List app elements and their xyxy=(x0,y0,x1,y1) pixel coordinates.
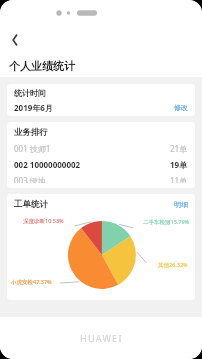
staticText: 003 绿地 xyxy=(14,175,46,183)
staticText: 11单 xyxy=(170,175,188,183)
staticText: 小虎安检47.37% xyxy=(11,278,52,286)
staticText: 业务排行 xyxy=(14,127,48,138)
button[interactable]: 003 绿地 xyxy=(14,175,188,183)
button[interactable]: 业务排行 xyxy=(7,122,195,188)
staticText: 002 10000000002 xyxy=(14,159,81,170)
button[interactable]: 工单统计 xyxy=(7,194,195,300)
staticText: 其他26.32% xyxy=(158,261,188,269)
staticText: 工单统计 xyxy=(14,199,48,210)
staticText: 19单 xyxy=(170,159,188,170)
button[interactable]: Back xyxy=(3,29,25,51)
staticText: 二手车检测15.79% xyxy=(143,218,190,226)
button[interactable]: 修改 xyxy=(174,103,188,112)
button[interactable]: 明细 xyxy=(174,200,188,209)
staticText: 明细 xyxy=(174,200,188,209)
button[interactable]: 统计时间 xyxy=(7,84,195,116)
staticText: HUAWEI xyxy=(80,332,123,344)
staticText: 2019年6月 xyxy=(14,102,53,112)
staticText: 21单 xyxy=(170,143,188,154)
staticText: 统计时间 xyxy=(14,88,46,98)
staticText: 个人业绩统计 xyxy=(9,59,75,73)
staticText: 修改 xyxy=(174,103,188,112)
button[interactable]: 002 10000000002 xyxy=(14,159,188,170)
staticText: 深度诊断10.53% xyxy=(23,217,64,225)
staticText: 001 技师1 xyxy=(14,143,51,154)
button[interactable]: 001 技师1 xyxy=(14,143,188,154)
